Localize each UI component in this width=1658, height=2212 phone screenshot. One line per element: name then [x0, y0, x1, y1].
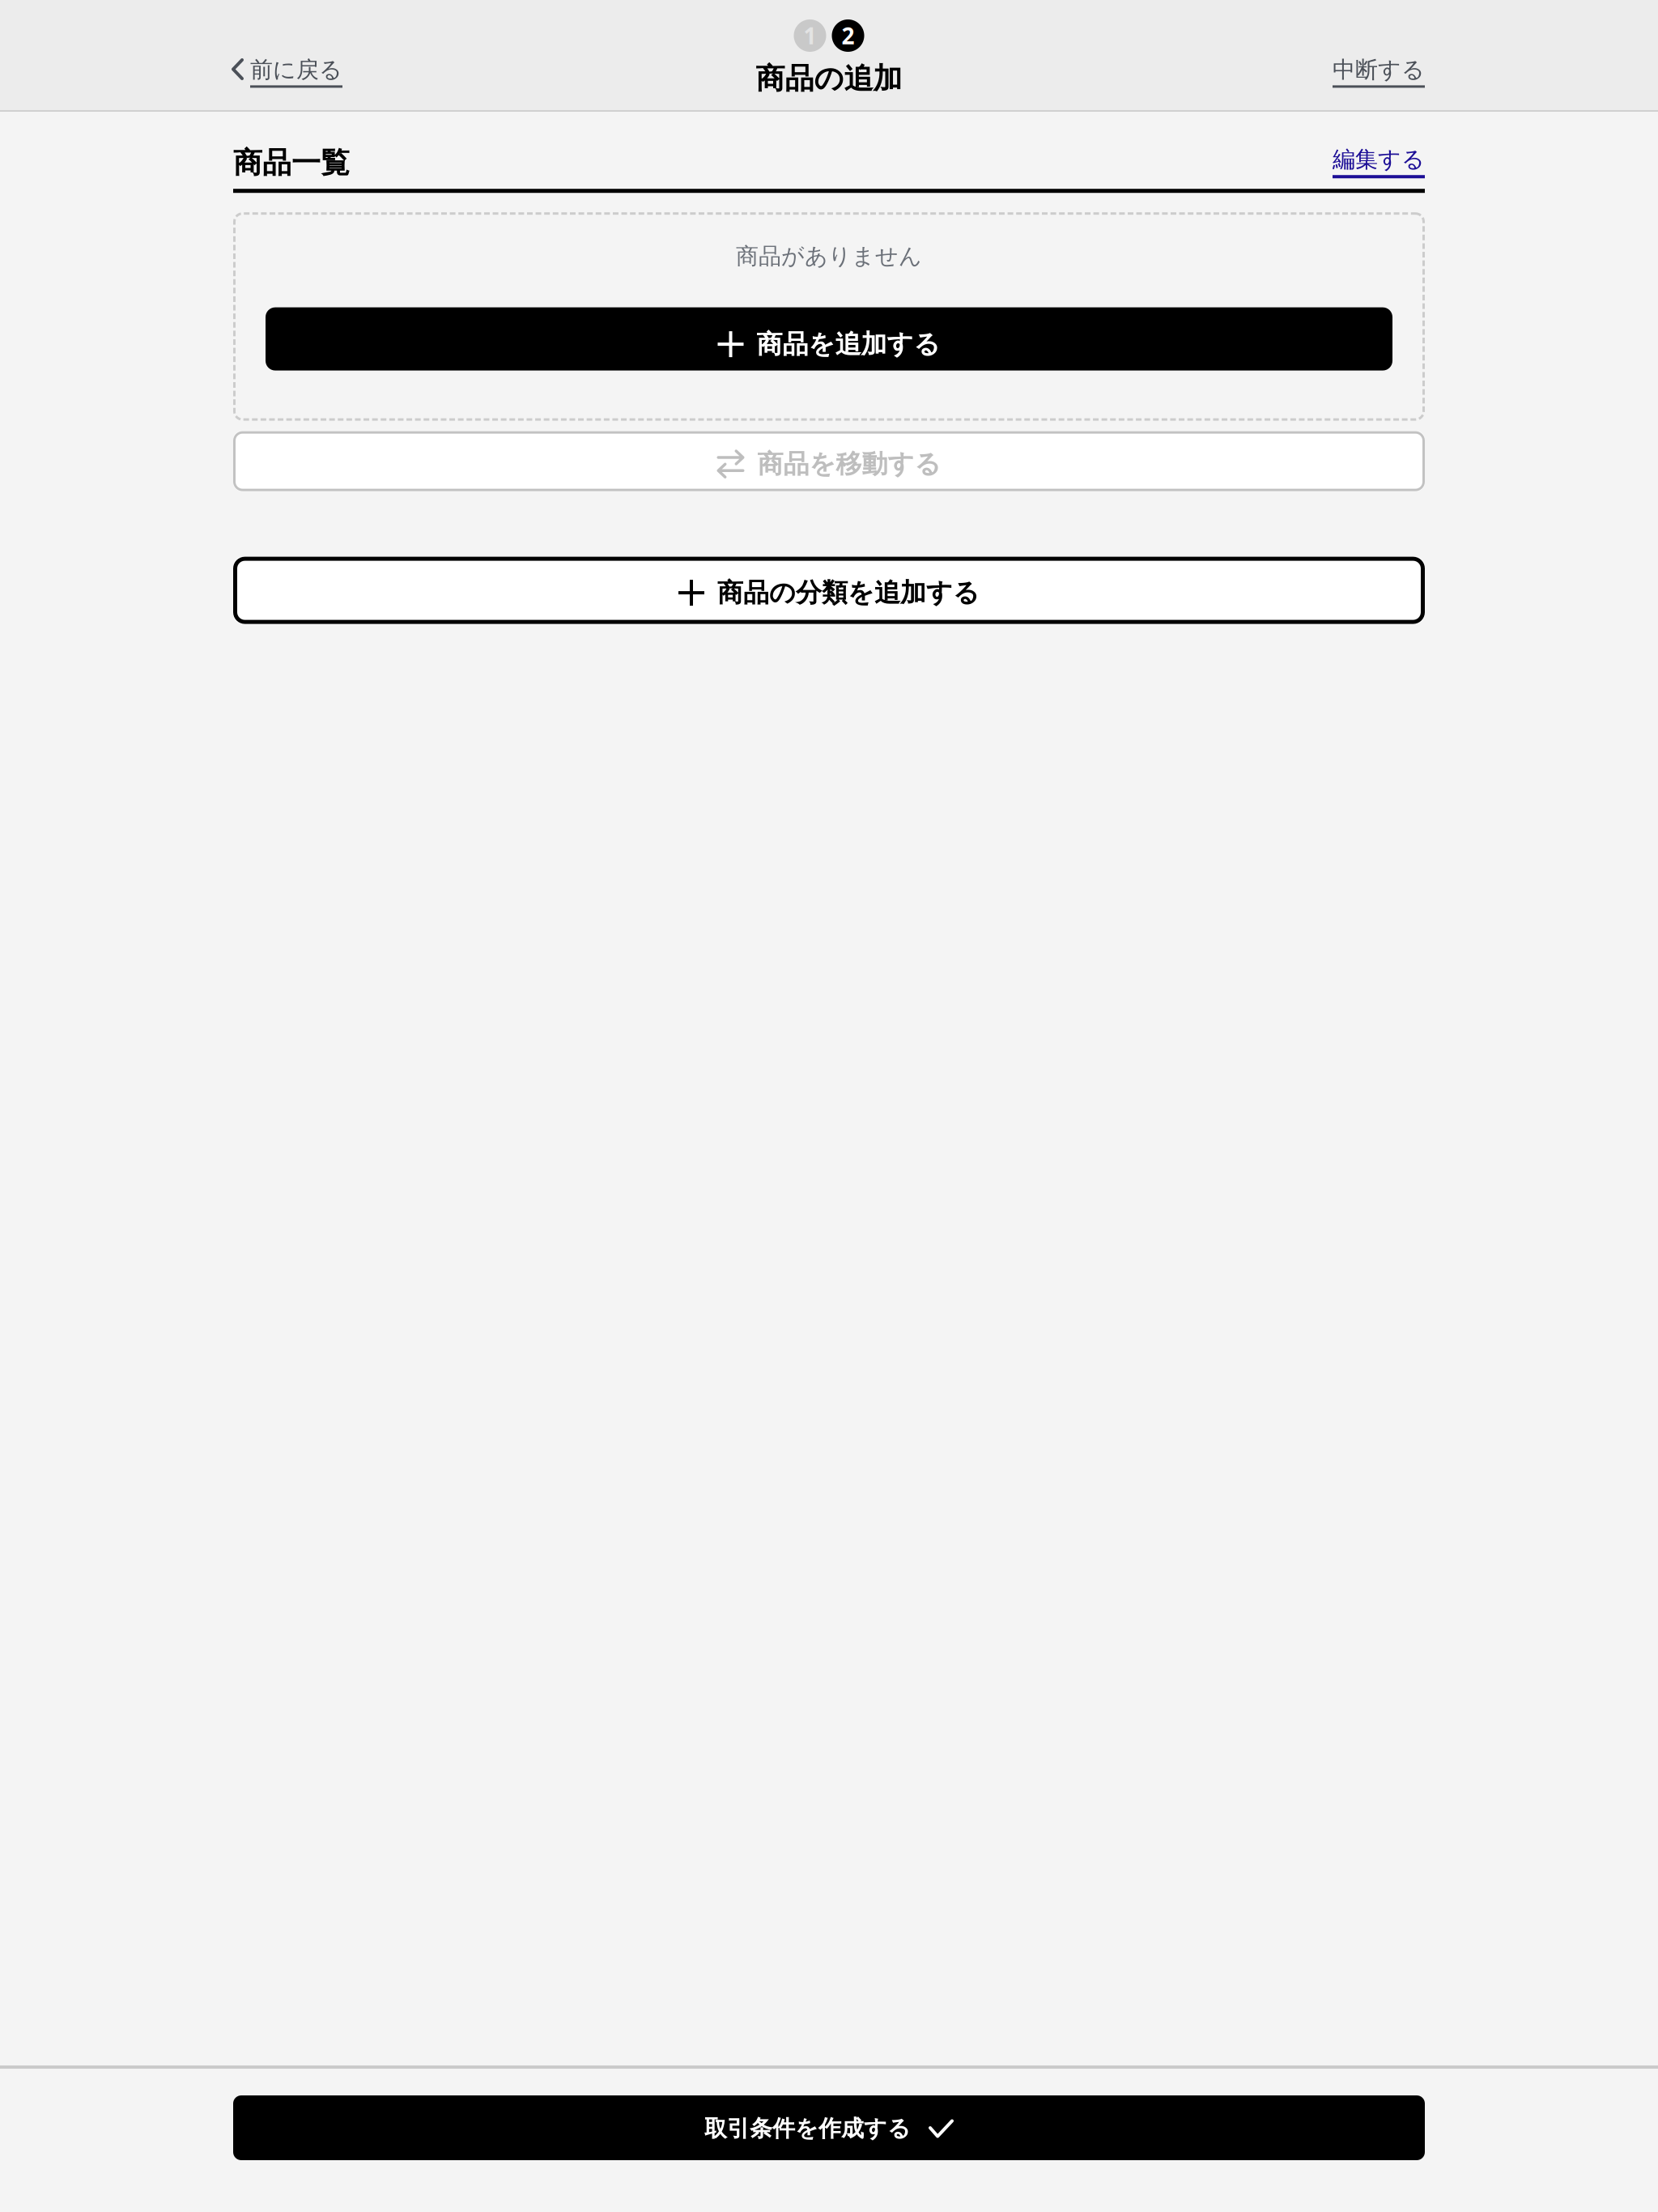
button[interactable]: 商品を追加する [266, 307, 1392, 371]
button[interactable]: 商品の分類を追加する [233, 557, 1425, 624]
staticText: 1 [803, 21, 816, 51]
staticText: 商品を移動する [757, 448, 941, 480]
button[interactable]: 中断する [1312, 0, 1658, 102]
staticText: 商品を追加する [757, 328, 940, 360]
staticText: 商品一覧 [233, 145, 350, 181]
button[interactable]: 編集する [1333, 146, 1425, 181]
button[interactable]: 前に戻る [0, 0, 363, 102]
staticText: 2 [842, 21, 855, 51]
staticText: 中断する [1333, 56, 1425, 84]
button[interactable]: 取引条件を作成する [233, 2095, 1425, 2160]
button[interactable]: 商品を移動する [233, 431, 1425, 491]
staticText: 商品の追加 [756, 61, 902, 97]
staticText: 前に戻る [250, 56, 342, 84]
staticText: 編集する [1333, 146, 1425, 173]
staticText: 商品がありません [736, 242, 922, 270]
staticText: 商品の分類を追加する [717, 577, 980, 609]
staticText: 取引条件を作成する [704, 2115, 911, 2143]
